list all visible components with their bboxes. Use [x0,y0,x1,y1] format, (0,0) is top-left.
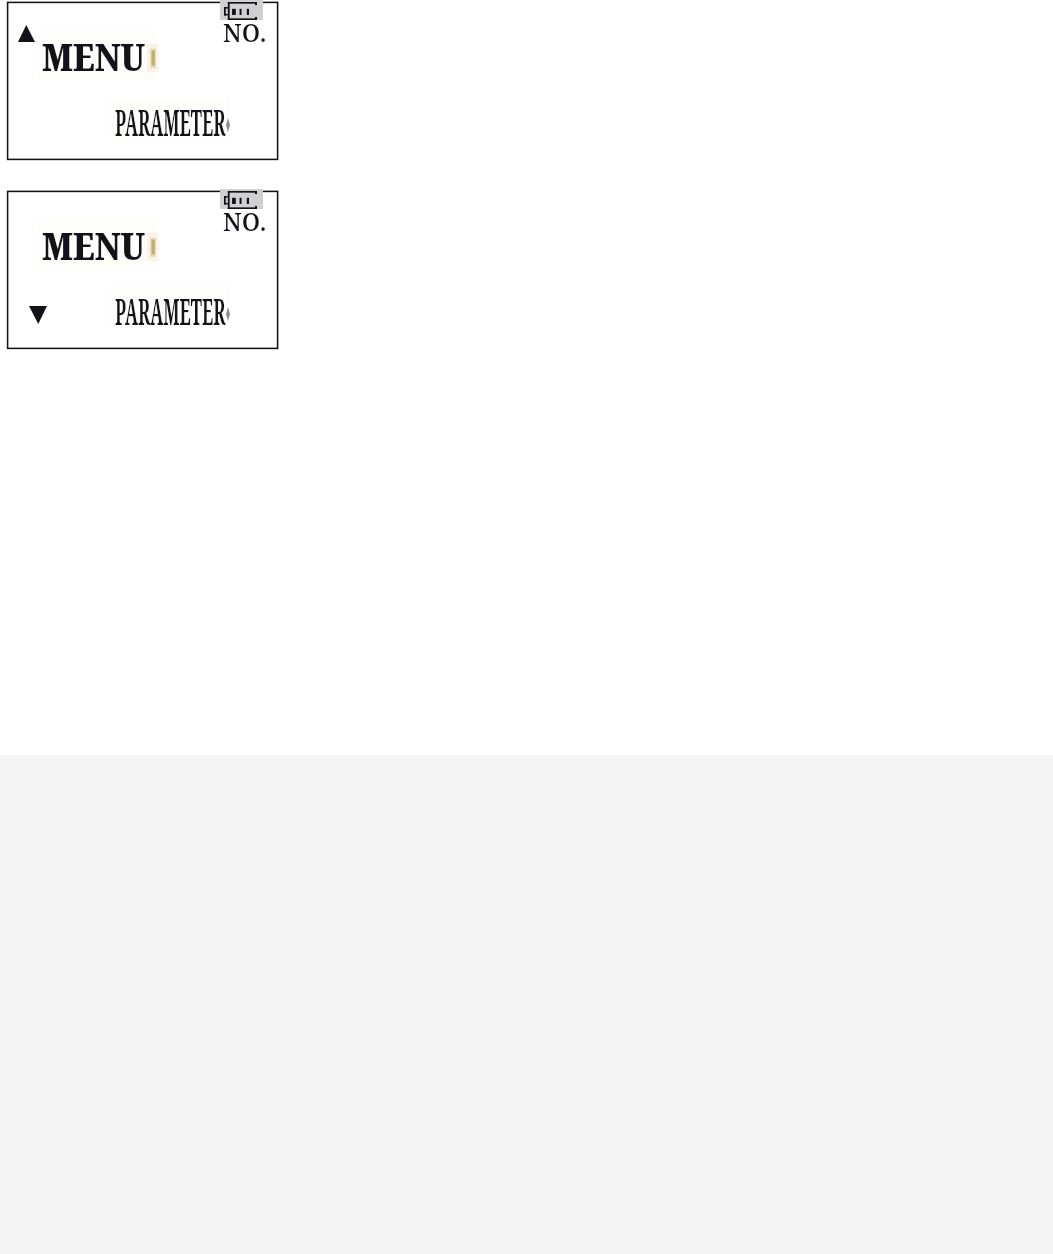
button[interactable]: Scroll up [18,25,35,42]
staticText: MENU [42,220,146,271]
button[interactable]: Battery level [8,191,278,348]
other: Battery level [224,191,257,209]
staticText: PARAMETER [115,97,226,147]
staticText: MENU [42,31,146,82]
other: Battery level [224,2,257,20]
staticText: PARAMETER [115,286,226,336]
staticText: NO. [223,14,267,49]
button[interactable]: Scroll down [29,306,47,324]
button[interactable]: Battery level [8,2,278,159]
staticText: NO. [223,203,267,238]
